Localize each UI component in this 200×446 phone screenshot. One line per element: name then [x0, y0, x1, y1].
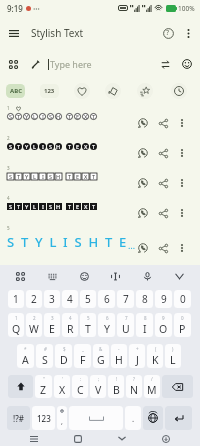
button[interactable]: 1: [8, 290, 24, 308]
button[interactable]: Favorites: [74, 83, 90, 99]
button[interactable]: Period: [125, 406, 141, 430]
button[interactable]: Home: [70, 431, 86, 446]
button[interactable]: _: [74, 344, 91, 368]
button[interactable]: Send to WhatsApp: [134, 239, 152, 257]
button[interactable]: Comma: [57, 406, 67, 430]
button[interactable]: 4: [0, 193, 200, 223]
button[interactable]: $: [55, 344, 72, 368]
button[interactable]: Swap case: [156, 55, 174, 73]
button[interactable]: Enter: [165, 406, 192, 430]
button[interactable]: #: [36, 344, 53, 368]
staticText: 3: [49, 292, 55, 306]
button[interactable]: Recent apps: [26, 431, 42, 446]
button[interactable]: Emoji: [77, 269, 92, 284]
button[interactable]: !: [108, 375, 124, 398]
button[interactable]: Backspace: [162, 375, 193, 398]
button[interactable]: Send to WhatsApp: [134, 114, 152, 132]
button[interactable]: 9: [155, 313, 172, 337]
staticText: 2: [33, 315, 36, 321]
button[interactable]: More: [173, 239, 191, 257]
button[interactable]: Change language: [143, 406, 163, 430]
button[interactable]: 6: [98, 313, 115, 337]
button[interactable]: Send to WhatsApp: [134, 204, 152, 222]
button[interactable]: More options: [178, 23, 198, 43]
button[interactable]: 8: [136, 313, 153, 337]
button[interactable]: Share: [154, 174, 172, 192]
button[interactable]: Share: [154, 144, 172, 162]
button[interactable]: ;: [90, 375, 106, 398]
button[interactable]: ': [54, 375, 70, 398]
button[interactable]: 8: [136, 290, 153, 308]
button[interactable]: *: [17, 344, 34, 368]
button[interactable]: Text editing: [108, 269, 123, 284]
button[interactable]: Send to WhatsApp: [134, 144, 152, 162]
button[interactable]: Tags: [105, 83, 121, 99]
button[interactable]: Emoji: [178, 55, 196, 73]
button[interactable]: Edit: [26, 55, 44, 73]
button[interactable]: More: [173, 174, 191, 192]
button[interactable]: +: [129, 344, 145, 368]
staticText: 8: [142, 292, 148, 306]
button[interactable]: ): [165, 344, 181, 368]
button[interactable]: 9: [155, 290, 172, 308]
button[interactable]: 4: [62, 290, 78, 308]
button[interactable]: &: [93, 344, 109, 368]
button[interactable]: Help: [158, 23, 178, 43]
button[interactable]: /: [144, 375, 160, 398]
button[interactable]: :: [72, 375, 88, 398]
button[interactable]: Keyboard layouts: [4, 55, 22, 73]
staticText: I: [42, 203, 44, 210]
button[interactable]: !?#: [7, 406, 30, 430]
button[interactable]: Decorations: [137, 83, 153, 99]
button[interactable]: Space: [69, 406, 123, 430]
button[interactable]: Clipboard: [13, 269, 28, 284]
button[interactable]: 0: [174, 290, 191, 308]
button[interactable]: 123: [40, 84, 59, 98]
button[interactable]: Send to WhatsApp: [134, 174, 152, 192]
button[interactable]: Share: [154, 204, 172, 222]
button[interactable]: 7: [117, 290, 134, 308]
button[interactable]: History: [171, 83, 187, 99]
button[interactable]: Share: [154, 239, 172, 257]
button[interactable]: Voice input: [140, 269, 155, 284]
staticText: E: [76, 173, 80, 180]
button[interactable]: 123: [32, 406, 55, 430]
button[interactable]: 1: [8, 313, 24, 337]
button[interactable]: More: [173, 114, 191, 132]
button[interactable]: 2: [26, 313, 42, 337]
button[interactable]: ": [35, 375, 52, 398]
button[interactable]: Shift: [8, 375, 33, 398]
staticText: A: [22, 353, 29, 367]
button[interactable]: 4: [62, 313, 78, 337]
button[interactable]: Keyboard settings: [45, 269, 60, 284]
button[interactable]: -: [111, 344, 127, 368]
button[interactable]: 3: [44, 290, 60, 308]
button[interactable]: More: [173, 204, 191, 222]
button[interactable]: More: [173, 144, 191, 162]
button[interactable]: 2: [0, 133, 200, 163]
button[interactable]: ?: [126, 375, 142, 398]
button[interactable]: Hide keyboard: [172, 269, 187, 284]
button[interactable]: 0: [174, 313, 191, 337]
button[interactable]: Download: [158, 431, 174, 446]
staticText: T: [17, 203, 21, 210]
staticText: 1: [15, 315, 18, 321]
button[interactable]: ABC: [6, 84, 25, 98]
button[interactable]: 3: [44, 313, 60, 337]
button[interactable]: 5: [80, 290, 96, 308]
staticText: 9:19: [7, 3, 23, 14]
button[interactable]: (: [147, 344, 163, 368]
button[interactable]: 5: [0, 223, 200, 265]
staticText: L: [33, 113, 36, 120]
staticText: U: [122, 322, 130, 336]
button[interactable]: 1: [0, 103, 200, 133]
button[interactable]: Navigation menu: [4, 23, 24, 43]
button[interactable]: Share: [154, 114, 172, 132]
button[interactable]: 3: [0, 163, 200, 193]
staticText: 2: [31, 292, 37, 306]
button[interactable]: 2: [26, 290, 42, 308]
button[interactable]: 5: [80, 313, 96, 337]
button[interactable]: 7: [117, 313, 134, 337]
button[interactable]: 6: [98, 290, 115, 308]
button[interactable]: Back: [114, 431, 130, 446]
